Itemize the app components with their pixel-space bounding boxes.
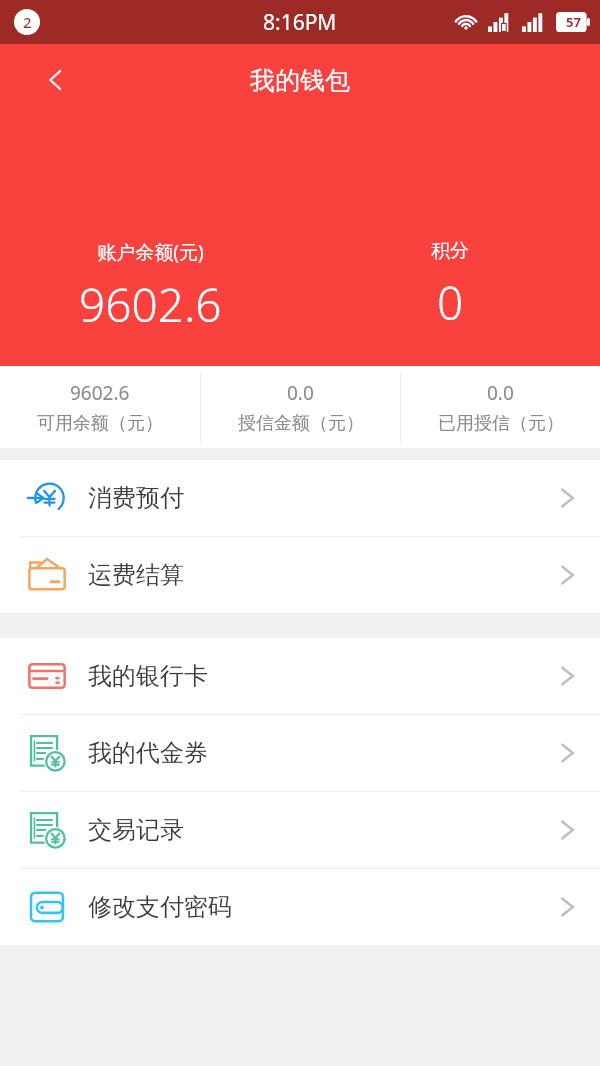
staticText: 0.0 xyxy=(287,380,314,406)
staticText: 交易记录 xyxy=(88,815,184,845)
staticText: 我的钱包 xyxy=(250,65,350,96)
staticText: 可用余额（元） xyxy=(37,412,163,435)
staticText: 消费预付 xyxy=(88,483,184,513)
staticText: 授信金额（元） xyxy=(238,412,364,435)
staticText: 账户余额(元) xyxy=(97,239,204,265)
staticText: 2 xyxy=(23,12,32,32)
staticText: 已用授信（元） xyxy=(438,412,564,435)
button[interactable]: 9602.6 xyxy=(0,366,200,448)
button[interactable]: 修改支付密码 xyxy=(0,869,600,945)
button[interactable]: 运费结算 xyxy=(0,537,600,613)
staticText: 运费结算 xyxy=(88,560,184,590)
button[interactable]: 消费预付 xyxy=(0,460,600,536)
button[interactable]: 0.0 xyxy=(201,366,400,448)
staticText: 9602.6 xyxy=(79,273,222,336)
staticText: 我的代金券 xyxy=(88,738,208,768)
staticText: 8:16PM xyxy=(263,8,337,37)
staticText: 9602.6 xyxy=(70,380,130,406)
button[interactable]: 我的代金券 xyxy=(0,715,600,791)
staticText: 0 xyxy=(437,271,464,334)
button[interactable]: 0.0 xyxy=(401,366,600,448)
staticText: 57 xyxy=(566,13,581,31)
button[interactable]: Back xyxy=(34,58,78,102)
staticText: 修改支付密码 xyxy=(88,892,232,922)
button[interactable]: 我的银行卡 xyxy=(0,638,600,714)
staticText: 0.0 xyxy=(487,380,514,406)
staticText: 积分 xyxy=(431,239,469,263)
button[interactable]: 交易记录 xyxy=(0,792,600,868)
staticText: 我的银行卡 xyxy=(88,661,208,691)
